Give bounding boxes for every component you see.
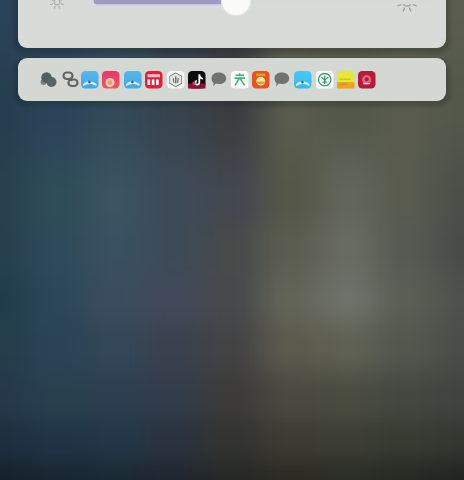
button[interactable]: Brightness: [18, 0, 446, 48]
button[interactable]: App shortcuts: [18, 58, 446, 101]
